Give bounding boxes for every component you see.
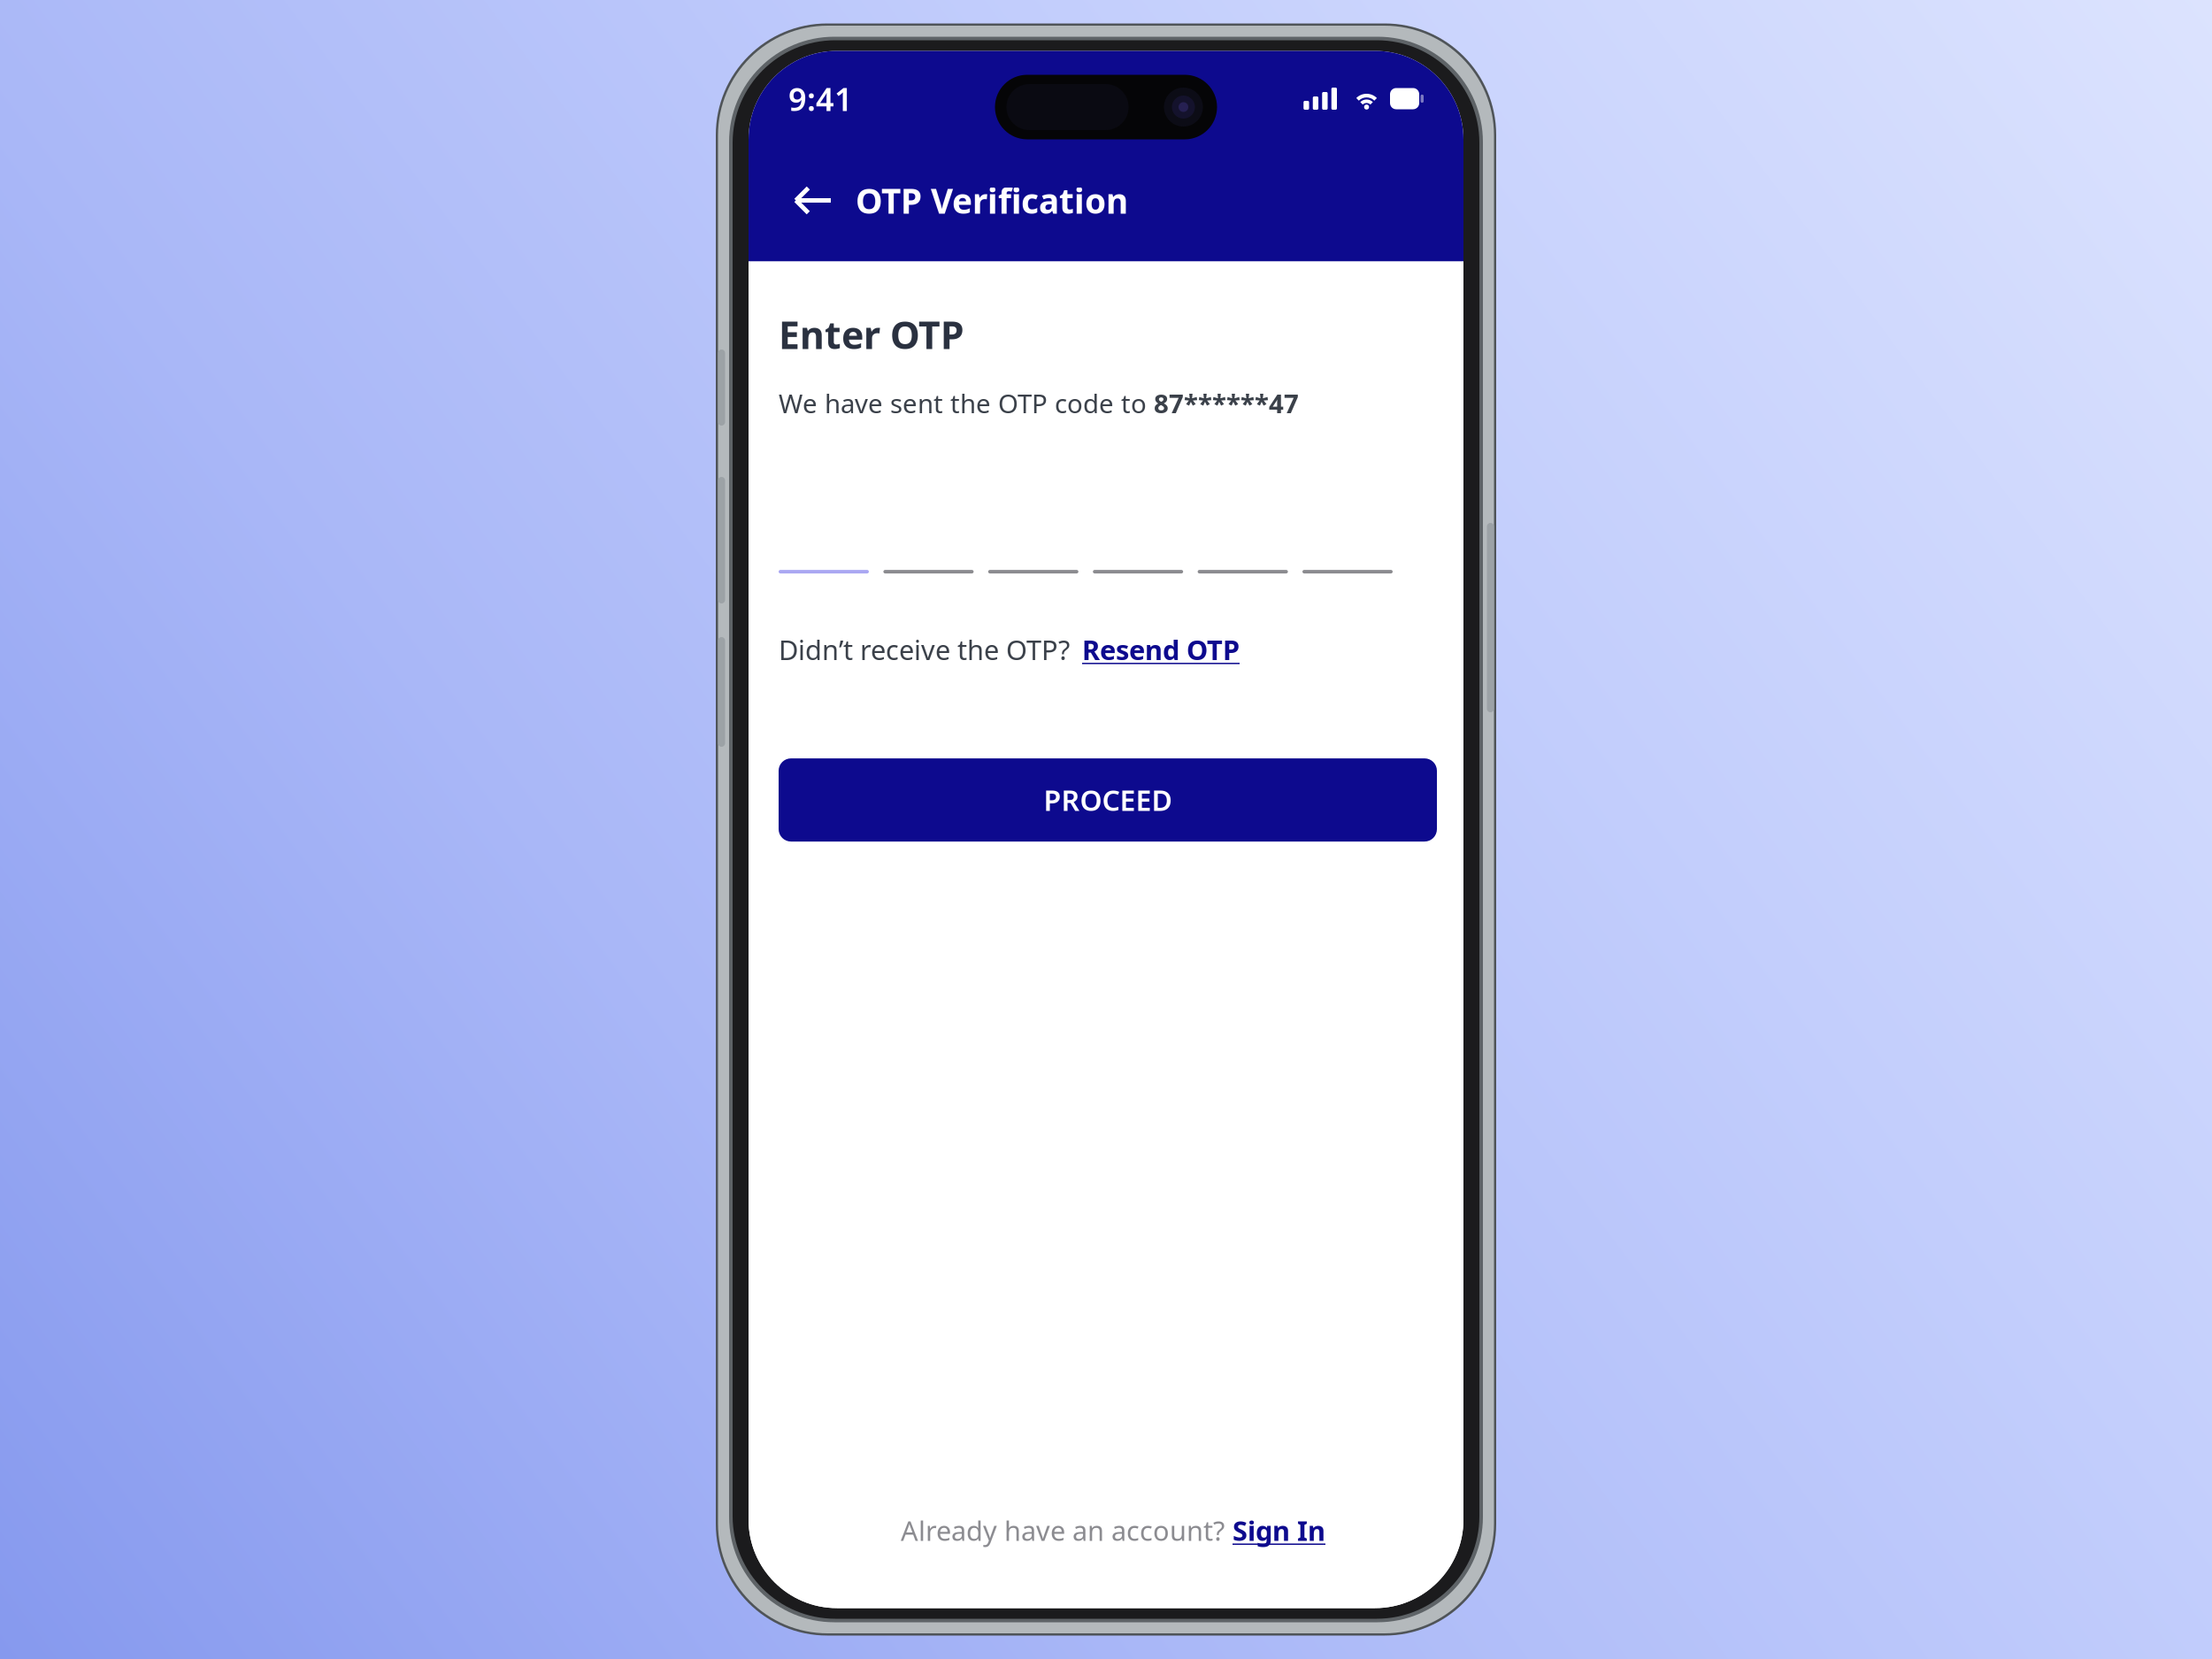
staticText: 9:41: [788, 78, 853, 120]
staticText: Resend OTP: [1082, 632, 1240, 668]
staticText: We have sent the OTP code to 87******47: [779, 386, 1299, 420]
staticText: Sign In: [1233, 1512, 1325, 1548]
staticText: Already have an account?: [901, 1512, 1225, 1548]
button[interactable]: Sign In: [1233, 1512, 1325, 1548]
staticText: OTP Verification: [856, 178, 1128, 223]
staticText: PROCEED: [1044, 781, 1172, 819]
staticText: Enter OTP: [779, 309, 964, 359]
staticText: Didn’t receive the OTP?: [779, 632, 1070, 668]
button[interactable]: Back: [788, 176, 836, 225]
button[interactable]: Resend OTP: [1082, 632, 1240, 668]
button[interactable]: PROCEED: [779, 758, 1437, 842]
